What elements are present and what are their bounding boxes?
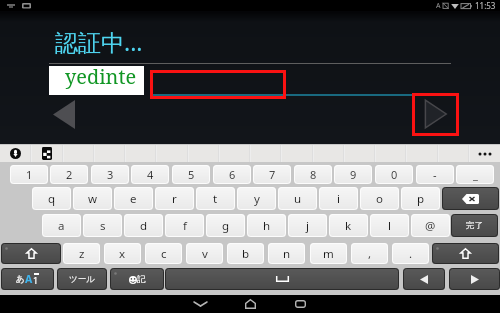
staticText: r — [172, 191, 177, 207]
button[interactable]: j — [288, 214, 327, 237]
staticText: 記 — [137, 274, 146, 285]
button[interactable]: s — [83, 214, 122, 237]
button[interactable]: Keyboard tool 15 — [469, 145, 500, 162]
button[interactable]: q — [32, 187, 71, 210]
staticText: d — [140, 218, 148, 234]
staticText: m — [323, 246, 334, 262]
staticText: . — [409, 246, 413, 262]
button[interactable]: 6 — [213, 165, 251, 184]
button[interactable]: d — [124, 214, 163, 237]
staticText: 認証中... — [55, 26, 143, 57]
button[interactable]: Switch input mode — [110, 268, 164, 290]
staticText: , — [368, 246, 372, 262]
button[interactable]: Shift — [1, 243, 61, 264]
button[interactable]: Keyboard tool 1 — [31, 145, 62, 162]
button[interactable]: w — [73, 187, 112, 210]
button[interactable]: 9 — [334, 165, 372, 184]
staticText: p — [417, 191, 425, 207]
button[interactable]: a — [42, 214, 81, 237]
button[interactable]: @ — [411, 214, 450, 237]
staticText: l — [388, 218, 391, 234]
staticText: n — [283, 246, 291, 262]
button[interactable]: CAPTCHA text field — [150, 70, 286, 99]
button[interactable]: Home — [236, 295, 264, 313]
staticText: - — [433, 167, 437, 182]
button[interactable]: 2 — [50, 165, 88, 184]
button[interactable]: g — [206, 214, 245, 237]
button[interactable]: - — [416, 165, 454, 184]
staticText: 8 — [310, 167, 317, 182]
button[interactable]: 7 — [253, 165, 291, 184]
button[interactable]: Move cursor right — [449, 268, 500, 290]
button[interactable]: , — [351, 243, 388, 264]
staticText: t — [213, 191, 218, 207]
button[interactable]: Space — [165, 268, 399, 290]
staticText: w — [88, 191, 98, 207]
staticText: 5 — [188, 167, 195, 182]
button[interactable]: 4 — [131, 165, 169, 184]
button[interactable]: . — [392, 243, 429, 264]
button[interactable]: Keyboard tool 0 — [0, 145, 31, 162]
button[interactable]: i — [319, 187, 358, 210]
button[interactable]: f — [165, 214, 204, 237]
staticText: c — [161, 246, 167, 262]
button[interactable]: m — [310, 243, 347, 264]
button[interactable]: _ — [456, 165, 494, 184]
button[interactable]: 3 — [91, 165, 129, 184]
button[interactable]: Play audio — [424, 99, 448, 129]
button[interactable]: 8 — [294, 165, 332, 184]
button[interactable]: CAPTCHA image — [49, 66, 144, 95]
button[interactable]: 5 — [172, 165, 210, 184]
staticText: f — [183, 218, 187, 234]
button[interactable]: u — [278, 187, 317, 210]
button[interactable]: l — [370, 214, 409, 237]
button[interactable]: k — [329, 214, 368, 237]
staticText: g — [222, 218, 230, 234]
button[interactable]: Hide keyboard — [186, 295, 214, 313]
staticText: 6 — [229, 167, 236, 182]
button[interactable]: o — [360, 187, 399, 210]
button[interactable]: r — [155, 187, 194, 210]
button[interactable]: Move cursor left — [403, 268, 445, 290]
staticText: b — [242, 246, 250, 262]
button[interactable]: x — [104, 243, 141, 264]
staticText: y — [254, 191, 260, 207]
button[interactable]: v — [186, 243, 223, 264]
staticText: @ — [425, 218, 436, 234]
button[interactable]: Previous — [53, 100, 75, 129]
button[interactable]: Recent apps — [286, 295, 314, 313]
button[interactable]: p — [401, 187, 440, 210]
button[interactable]: t — [196, 187, 235, 210]
button[interactable]: y — [237, 187, 276, 210]
button[interactable]: 完了 — [451, 214, 498, 237]
staticText: x — [119, 246, 126, 262]
button[interactable]: 1 — [10, 165, 48, 184]
button[interactable]: n — [268, 243, 305, 264]
button[interactable]: Backspace — [442, 187, 499, 210]
button[interactable]: Switch input mode — [1, 268, 54, 290]
button[interactable]: 0 — [375, 165, 413, 184]
button[interactable]: b — [227, 243, 264, 264]
button[interactable]: z — [63, 243, 100, 264]
staticText: yedinte — [65, 64, 136, 91]
button[interactable]: Shift — [432, 243, 499, 264]
button[interactable]: ツール — [57, 268, 107, 290]
button[interactable]: e — [114, 187, 153, 210]
button[interactable]: c — [145, 243, 182, 264]
staticText: 1 — [26, 167, 33, 182]
button[interactable]: h — [247, 214, 286, 237]
staticText: i — [337, 191, 340, 207]
